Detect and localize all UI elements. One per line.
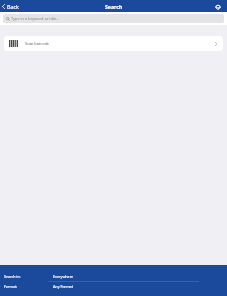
staticText: Scan barcode <box>25 41 49 46</box>
button[interactable]: Account <box>212 1 223 12</box>
button[interactable]: Back <box>0 0 22 12</box>
button[interactable]: Type in a keyword or title... <box>3 14 224 23</box>
staticText: Search <box>105 3 123 10</box>
button[interactable]: Scan barcode <box>4 36 223 51</box>
staticText: Search in: <box>4 274 21 279</box>
staticText: Any Format <box>53 284 73 289</box>
staticText: Everywhere <box>53 274 74 279</box>
staticText: Type in a keyword or title... <box>11 16 60 21</box>
staticText: Format: <box>4 284 18 289</box>
staticText: Back <box>7 3 19 10</box>
button[interactable]: Search in: <box>0 271 227 282</box>
button[interactable]: Format: <box>0 282 227 291</box>
